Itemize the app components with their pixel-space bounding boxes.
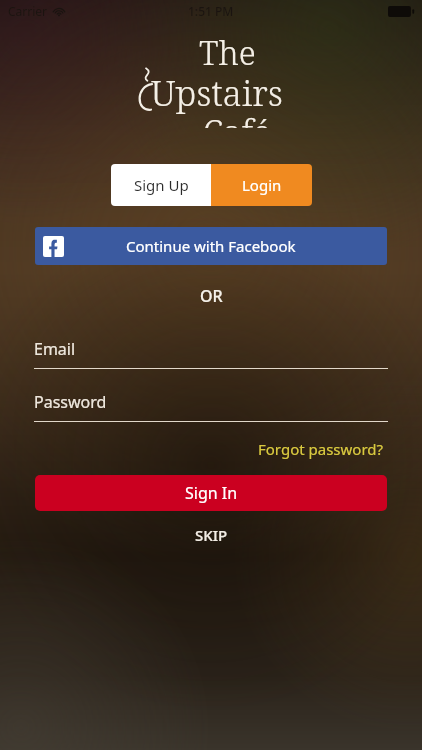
staticText: Forgot password? (258, 439, 384, 459)
button[interactable]: Sign Up (111, 164, 211, 206)
button[interactable]: Continue with Facebook (35, 227, 387, 265)
staticText: The (199, 30, 256, 75)
staticText: Password (34, 391, 107, 413)
staticText: Upstairs (151, 69, 283, 117)
button[interactable]: Forgot password? (254, 435, 388, 463)
staticText: Continue with Facebook (126, 236, 296, 256)
staticText: SKIP (195, 525, 228, 545)
staticText: Email (34, 338, 76, 360)
button[interactable]: Sign In (35, 475, 387, 511)
staticText: Login (242, 175, 282, 195)
staticText: Sign In (185, 482, 238, 504)
button[interactable]: SKIP (179, 521, 244, 549)
button[interactable]: Password (34, 391, 388, 422)
button[interactable]: Login (211, 164, 312, 206)
staticText: 1:51 PM (188, 3, 234, 19)
staticText: Carrier (8, 3, 48, 19)
staticText: OR (200, 285, 223, 307)
staticText: Café (203, 109, 271, 128)
staticText: Sign Up (134, 175, 189, 195)
button[interactable]: Email (34, 338, 388, 369)
